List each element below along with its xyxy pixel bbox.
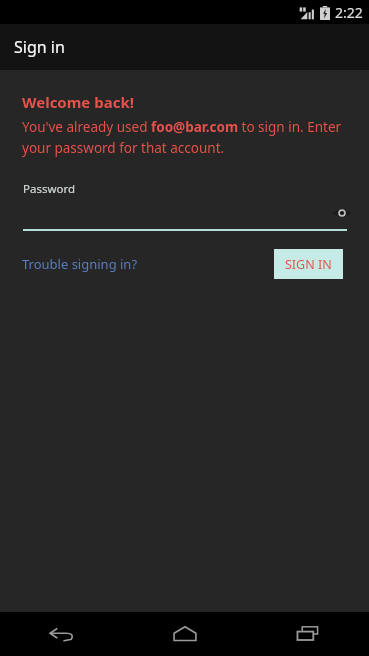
button[interactable]: SIGN IN	[274, 249, 343, 279]
staticText: SIGN IN	[285, 256, 332, 273]
staticText: Password	[23, 181, 76, 197]
button[interactable]: Password	[0, 179, 369, 231]
staticText: 2:22	[335, 3, 363, 22]
staticText: You've already used foo@bar.com to sign …	[22, 118, 349, 157]
button[interactable]: Back	[0, 612, 123, 656]
button[interactable]: Show password	[331, 205, 353, 221]
staticText: Welcome back!	[22, 92, 134, 112]
staticText: Trouble signing in?	[22, 255, 138, 273]
button[interactable]: Trouble signing in?	[22, 255, 138, 273]
button[interactable]: Home	[123, 612, 246, 656]
button[interactable]: Recent apps	[246, 612, 369, 656]
staticText: Sign in	[14, 36, 65, 58]
